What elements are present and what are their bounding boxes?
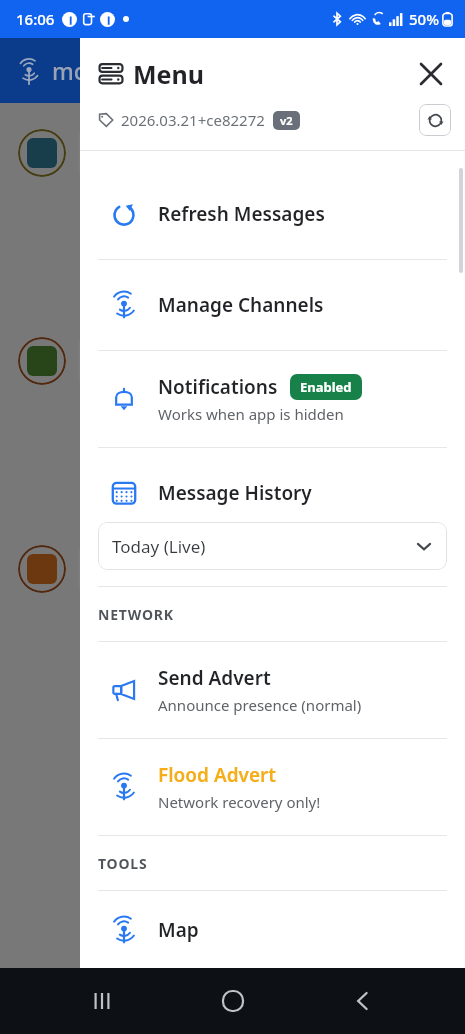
button[interactable]: Map: [80, 891, 465, 968]
staticText: 2026.03.21+ce82272: [121, 110, 265, 130]
staticText: 16:06: [16, 9, 55, 29]
staticText: Send Advert: [158, 665, 271, 691]
button[interactable]: Back: [334, 972, 392, 1030]
button[interactable]: Flood Advert: [80, 739, 465, 835]
staticText: Network recovery only!: [158, 792, 321, 812]
button[interactable]: Send Advert: [80, 642, 465, 738]
staticText: Today (Live): [112, 535, 206, 558]
staticText: TOOLS: [98, 854, 148, 873]
button[interactable]: Refresh Messages: [80, 169, 465, 259]
staticText: Refresh Messages: [158, 201, 325, 227]
staticText: Enabled: [300, 378, 352, 396]
button[interactable]: Message History: [98, 464, 447, 522]
staticText: 50%: [409, 9, 439, 29]
staticText: Menu: [133, 57, 205, 91]
staticText: v2: [280, 113, 293, 128]
staticText: Works when app is hidden: [158, 404, 344, 424]
staticText: Announce presence (normal): [158, 695, 362, 715]
button[interactable]: Sync: [419, 104, 451, 136]
button[interactable]: Notifications: [80, 351, 465, 447]
button[interactable]: Manage Channels: [80, 260, 465, 350]
staticText: Notifications: [158, 374, 278, 400]
button[interactable]: Recents: [73, 972, 131, 1030]
staticText: Map: [158, 917, 199, 943]
staticText: Manage Channels: [158, 292, 324, 318]
button[interactable]: Close menu: [411, 54, 451, 94]
button[interactable]: Today (Live): [98, 522, 447, 570]
staticText: Flood Advert: [158, 762, 277, 788]
staticText: Message History: [158, 480, 312, 506]
staticText: mc: [52, 55, 86, 86]
staticText: NETWORK: [98, 605, 174, 624]
button[interactable]: Home: [204, 972, 262, 1030]
